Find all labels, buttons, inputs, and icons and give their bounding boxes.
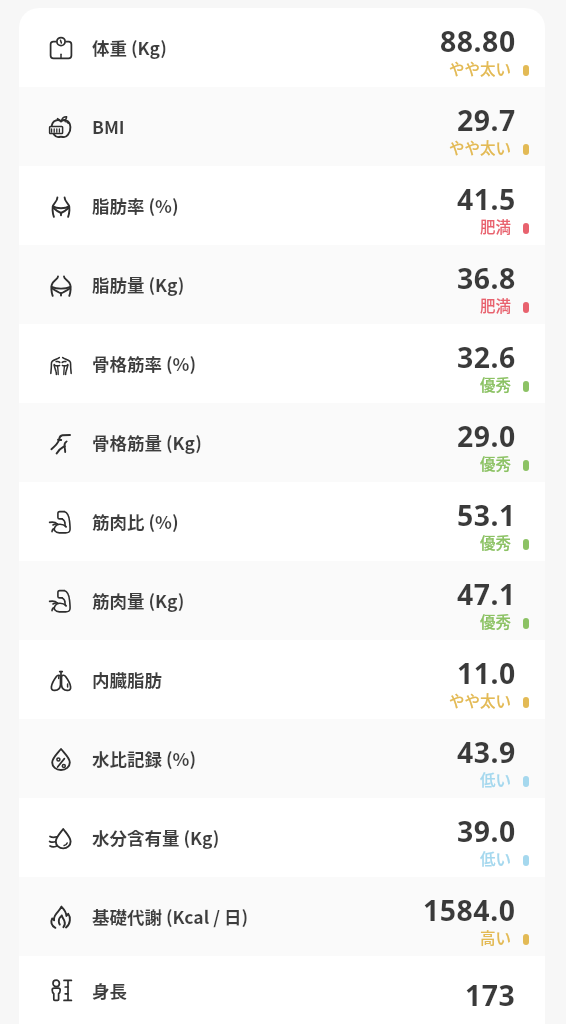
staticText: やや太い (449, 136, 512, 158)
button[interactable]: 身長 (19, 956, 545, 1024)
staticText: 筋肉量 (Kg) (92, 588, 185, 613)
staticText: 29.0 (457, 417, 516, 456)
staticText: 脂肪量 (Kg) (92, 272, 185, 297)
staticText: 優秀 (480, 373, 512, 395)
staticText: 39.0 (457, 812, 516, 851)
button[interactable]: 骨格筋率 (%) (19, 324, 545, 403)
button[interactable]: BMI (19, 87, 545, 166)
staticText: 優秀 (480, 452, 512, 474)
staticText: 41.5 (457, 180, 516, 219)
button[interactable]: 筋肉量 (Kg) (19, 561, 545, 640)
button[interactable]: 基礎代謝 (Kcal / 日) (19, 877, 545, 956)
staticText: 内臓脂肪 (92, 667, 162, 692)
staticText: 11.0 (457, 654, 516, 693)
staticText: 低い (480, 847, 512, 869)
staticText: 53.1 (457, 496, 516, 535)
staticText: 47.1 (457, 575, 516, 614)
staticText: 骨格筋率 (%) (92, 351, 197, 376)
staticText: 173 (465, 976, 516, 1015)
staticText: 脂肪率 (%) (92, 193, 179, 218)
button[interactable]: 内臓脂肪 (19, 640, 545, 719)
staticText: やや太い (449, 57, 512, 79)
staticText: 骨格筋量 (Kg) (92, 430, 202, 455)
staticText: 低い (480, 768, 512, 790)
staticText: 36.8 (457, 259, 516, 298)
button[interactable]: 体重 (Kg) (19, 8, 545, 87)
staticText: 筋肉比 (%) (92, 509, 179, 534)
button[interactable]: 筋肉比 (%) (19, 482, 545, 561)
staticText: 水分含有量 (Kg) (92, 825, 220, 850)
staticText: 29.7 (457, 101, 516, 140)
button[interactable]: 脂肪率 (%) (19, 166, 545, 245)
staticText: 肥満 (480, 215, 512, 237)
staticText: 43.9 (457, 733, 516, 772)
staticText: 体重 (Kg) (92, 35, 167, 60)
staticText: やや太い (449, 689, 512, 711)
staticText: 優秀 (480, 531, 512, 553)
staticText: 高い (480, 926, 512, 948)
staticText: 1584.0 (423, 891, 516, 930)
staticText: BMI (92, 114, 125, 139)
button[interactable]: 骨格筋量 (Kg) (19, 403, 545, 482)
staticText: 身長 (92, 978, 127, 1003)
button[interactable]: 脂肪量 (Kg) (19, 245, 545, 324)
button[interactable]: 水分含有量 (Kg) (19, 798, 545, 877)
staticText: 水比記録 (%) (92, 746, 197, 771)
staticText: 優秀 (480, 610, 512, 632)
button[interactable]: 水比記録 (%) (19, 719, 545, 798)
staticText: 88.80 (440, 22, 516, 61)
staticText: 基礎代謝 (Kcal / 日) (92, 904, 249, 929)
staticText: 肥満 (480, 294, 512, 316)
staticText: 32.6 (457, 338, 516, 377)
